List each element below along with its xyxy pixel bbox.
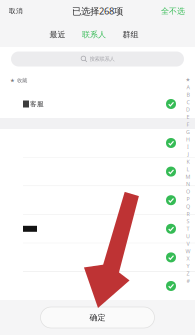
staticText: D xyxy=(186,106,190,113)
button[interactable]: 取消 xyxy=(0,0,32,22)
button[interactable]: 全不选 xyxy=(151,0,195,22)
staticText: 收藏 xyxy=(17,77,27,84)
staticText: G xyxy=(186,128,190,135)
staticText: A xyxy=(186,84,189,91)
staticText: I xyxy=(187,143,189,150)
staticText: O xyxy=(186,188,190,195)
staticText: 全不选 xyxy=(161,6,185,16)
staticText: # xyxy=(186,277,189,284)
staticText: 已选择268项 xyxy=(72,5,123,17)
staticText: Q xyxy=(186,203,190,210)
staticText: S xyxy=(186,218,189,225)
staticText: F xyxy=(186,121,189,128)
staticText: E xyxy=(186,113,189,120)
staticText: 取消 xyxy=(9,7,23,15)
staticText: R xyxy=(186,210,189,217)
button[interactable] xyxy=(0,158,195,186)
button[interactable]: 搜索联系人 xyxy=(0,51,195,66)
button[interactable]: 客服 xyxy=(0,90,195,118)
staticText: 最近 xyxy=(49,30,65,39)
staticText: ★ xyxy=(185,77,190,83)
staticText: W xyxy=(185,247,190,255)
staticText: 客服 xyxy=(30,100,44,108)
staticText: 联系人 xyxy=(82,30,106,39)
staticText: X xyxy=(186,255,189,262)
staticText: N xyxy=(186,180,190,188)
staticText: ★ xyxy=(10,77,15,84)
staticText: M xyxy=(185,173,190,180)
button[interactable] xyxy=(0,243,195,271)
button[interactable] xyxy=(0,215,195,243)
staticText: C xyxy=(186,98,189,106)
button[interactable]: 确定 xyxy=(40,307,154,328)
button[interactable] xyxy=(0,186,195,214)
staticText: Y xyxy=(186,262,189,269)
staticText: P xyxy=(186,195,189,202)
staticText: T xyxy=(186,225,189,232)
button[interactable] xyxy=(0,272,195,300)
staticText: B xyxy=(186,91,189,98)
staticText: K xyxy=(186,158,189,165)
staticText: H xyxy=(186,136,190,143)
staticText: U xyxy=(186,233,190,240)
staticText: V xyxy=(186,240,189,247)
staticText: Z xyxy=(186,270,189,277)
staticText: 确定 xyxy=(89,313,105,322)
button[interactable] xyxy=(0,129,195,157)
button[interactable]: 最近 xyxy=(42,23,73,45)
staticText: L xyxy=(186,166,189,173)
staticText: 搜索联系人 xyxy=(89,56,114,62)
staticText: 群组 xyxy=(122,30,138,39)
button[interactable]: 群组 xyxy=(115,23,146,45)
button[interactable]: 联系人 xyxy=(73,23,115,45)
